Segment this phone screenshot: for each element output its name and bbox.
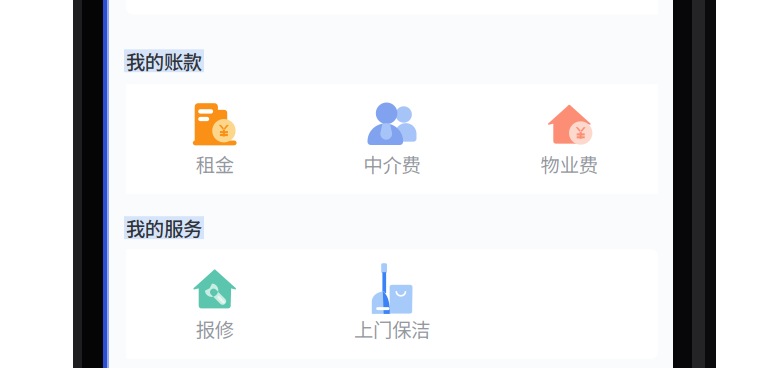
button[interactable]: 中介费 bbox=[303, 84, 481, 194]
button[interactable]: 租金 bbox=[126, 84, 303, 194]
button[interactable]: 上门保洁 bbox=[303, 249, 481, 359]
staticText: 中介费 bbox=[363, 150, 420, 178]
staticText: 我的服务 bbox=[126, 214, 202, 242]
staticText: 报修 bbox=[196, 314, 234, 342]
button[interactable]: 报修 bbox=[126, 249, 303, 359]
staticText: 我的账款 bbox=[126, 47, 202, 75]
button[interactable]: 物业费 bbox=[481, 84, 658, 194]
staticText: 租金 bbox=[196, 150, 234, 178]
staticText: 物业费 bbox=[541, 150, 598, 178]
staticText: 上门保洁 bbox=[354, 314, 430, 342]
